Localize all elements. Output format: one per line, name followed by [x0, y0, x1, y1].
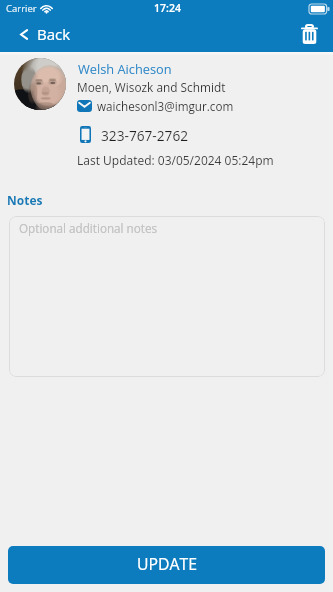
staticText: UPDATE [137, 553, 197, 575]
button[interactable]: Delete [289, 21, 333, 52]
staticText: Notes [7, 192, 43, 208]
staticText: Last Updated: 03/05/2024 05:24pm [77, 152, 274, 168]
staticText: waichesonl3@imgur.com [97, 98, 234, 114]
button[interactable]: UPDATE [8, 546, 325, 584]
button[interactable]: Optional additional notes [9, 216, 325, 377]
staticText: Optional additional notes [19, 220, 158, 236]
staticText: 17:24 [154, 1, 181, 15]
staticText: 323-767-2762 [101, 126, 189, 145]
staticText: Carrier [6, 2, 37, 15]
staticText: Moen, Wisozk and Schmidt [77, 79, 226, 95]
staticText: Welsh Aicheson [78, 60, 172, 77]
staticText: Back [37, 24, 71, 44]
button[interactable]: Back [0, 20, 83, 52]
